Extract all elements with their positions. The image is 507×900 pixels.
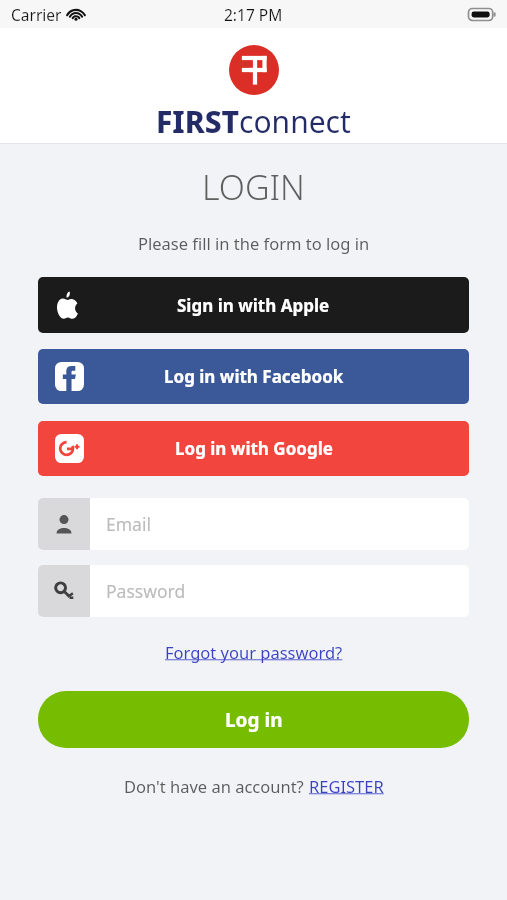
staticText: Carrier	[11, 4, 62, 25]
staticText: Password	[106, 579, 186, 603]
staticText: Please fill in the form to log in	[138, 232, 370, 254]
staticText: FIRSTconnect	[156, 101, 351, 142]
staticText: Forgot your password?	[165, 641, 343, 663]
button[interactable]: Forgot your password?	[161, 639, 347, 665]
staticText: Email	[106, 512, 151, 536]
staticText: Log in with Google	[175, 437, 333, 460]
button[interactable]: REGISTER	[309, 775, 384, 797]
button[interactable]: Log in with Facebook	[38, 349, 469, 404]
button[interactable]: Log in	[38, 691, 469, 748]
staticText: Log in	[225, 707, 283, 733]
staticText: LOGIN	[202, 164, 305, 210]
staticText: 2:17 PM	[224, 4, 283, 25]
staticText: Don't have an account?	[124, 775, 309, 797]
button[interactable]: Sign in with Apple	[38, 277, 469, 333]
button[interactable]: Password	[38, 565, 469, 617]
button[interactable]: Log in with Google	[38, 421, 469, 476]
button[interactable]: Email	[38, 498, 469, 550]
staticText: Log in with Facebook	[164, 365, 344, 388]
staticText: REGISTER	[309, 775, 384, 797]
staticText: Sign in with Apple	[177, 294, 330, 317]
